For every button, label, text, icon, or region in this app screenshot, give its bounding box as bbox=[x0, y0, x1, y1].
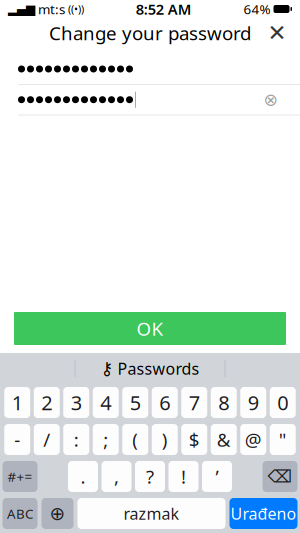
staticText: : bbox=[74, 427, 79, 452]
staticText: razmak bbox=[123, 503, 179, 524]
staticText: " bbox=[279, 427, 287, 452]
staticText: & bbox=[217, 427, 231, 452]
staticText: Urađeno bbox=[230, 503, 296, 524]
button[interactable]: 5 bbox=[122, 387, 148, 418]
staticText: ’ bbox=[215, 464, 218, 489]
staticText: OK bbox=[136, 316, 163, 341]
staticText: 3 bbox=[71, 389, 82, 416]
staticText: 2 bbox=[41, 389, 52, 416]
button[interactable]: razmak bbox=[77, 498, 225, 529]
staticText: ( bbox=[132, 427, 138, 452]
button[interactable]: Delete bbox=[262, 461, 297, 492]
button[interactable]: ⚷ bbox=[90, 354, 209, 382]
button[interactable]: 4 bbox=[93, 387, 119, 418]
button[interactable]: ! bbox=[168, 461, 198, 492]
button[interactable]: ? bbox=[135, 461, 165, 492]
button[interactable]: : bbox=[63, 424, 89, 455]
button[interactable]: $ bbox=[181, 424, 207, 455]
staticText: ⊗ bbox=[263, 90, 278, 110]
button[interactable]: . bbox=[68, 461, 98, 492]
button[interactable]: , bbox=[101, 461, 131, 492]
staticText: Change your password bbox=[49, 21, 251, 45]
staticText: ) bbox=[162, 427, 168, 452]
button[interactable]: OK bbox=[14, 312, 286, 345]
staticText: , bbox=[114, 464, 119, 489]
staticText: 6 bbox=[159, 389, 170, 416]
button[interactable]: - bbox=[4, 424, 30, 455]
button[interactable]: Close bbox=[260, 16, 294, 50]
staticText: @ bbox=[245, 427, 262, 452]
staticText: 64% bbox=[243, 0, 270, 18]
staticText: 8:52 AM bbox=[136, 0, 192, 19]
staticText: 9 bbox=[248, 389, 259, 416]
staticText: $ bbox=[189, 427, 200, 452]
staticText: #+= bbox=[7, 468, 32, 485]
staticText: ; bbox=[103, 427, 108, 452]
staticText: 4 bbox=[100, 389, 111, 416]
button[interactable]: 8 bbox=[211, 387, 237, 418]
button[interactable]: Urađeno bbox=[229, 498, 297, 529]
button[interactable]: 7 bbox=[181, 387, 207, 418]
staticText: ⊕ bbox=[49, 503, 65, 524]
button[interactable]: ABC bbox=[2, 498, 37, 529]
staticText: ? bbox=[146, 464, 154, 489]
button[interactable]: 9 bbox=[240, 387, 266, 418]
staticText: ▂▄▆ bbox=[8, 2, 35, 16]
button[interactable]: 0 bbox=[270, 387, 296, 418]
staticText: . bbox=[80, 464, 85, 489]
button[interactable]: ( bbox=[122, 424, 148, 455]
staticText: 7 bbox=[189, 389, 200, 416]
staticText: ⚷ bbox=[100, 359, 113, 378]
button[interactable]: Next keyboard bbox=[41, 498, 73, 529]
staticText: - bbox=[14, 427, 20, 452]
staticText: ! bbox=[181, 464, 186, 489]
staticText: mt:s bbox=[35, 0, 65, 18]
staticText: 8 bbox=[218, 389, 229, 416]
staticText: ABC bbox=[7, 505, 33, 522]
button[interactable]: / bbox=[34, 424, 60, 455]
button[interactable]: ) bbox=[152, 424, 178, 455]
staticText: 1 bbox=[12, 389, 23, 416]
staticText: Passwords bbox=[117, 358, 199, 379]
button[interactable]: & bbox=[211, 424, 237, 455]
button[interactable]: 3 bbox=[63, 387, 89, 418]
button[interactable]: ; bbox=[93, 424, 119, 455]
staticText: ((•)) bbox=[65, 2, 84, 16]
staticText: ⌫ bbox=[267, 467, 292, 486]
staticText: 0 bbox=[277, 389, 288, 416]
button[interactable]: #+= bbox=[2, 461, 37, 492]
button[interactable]: 1 bbox=[4, 387, 30, 418]
staticText: / bbox=[43, 427, 50, 452]
button[interactable]: ’ bbox=[202, 461, 232, 492]
button[interactable]: " bbox=[270, 424, 296, 455]
button[interactable]: Clear text bbox=[260, 89, 282, 111]
staticText: 5 bbox=[130, 389, 141, 416]
button[interactable]: 6 bbox=[152, 387, 178, 418]
button[interactable]: 2 bbox=[34, 387, 60, 418]
button[interactable]: @ bbox=[240, 424, 266, 455]
staticText: ✕ bbox=[267, 20, 286, 46]
